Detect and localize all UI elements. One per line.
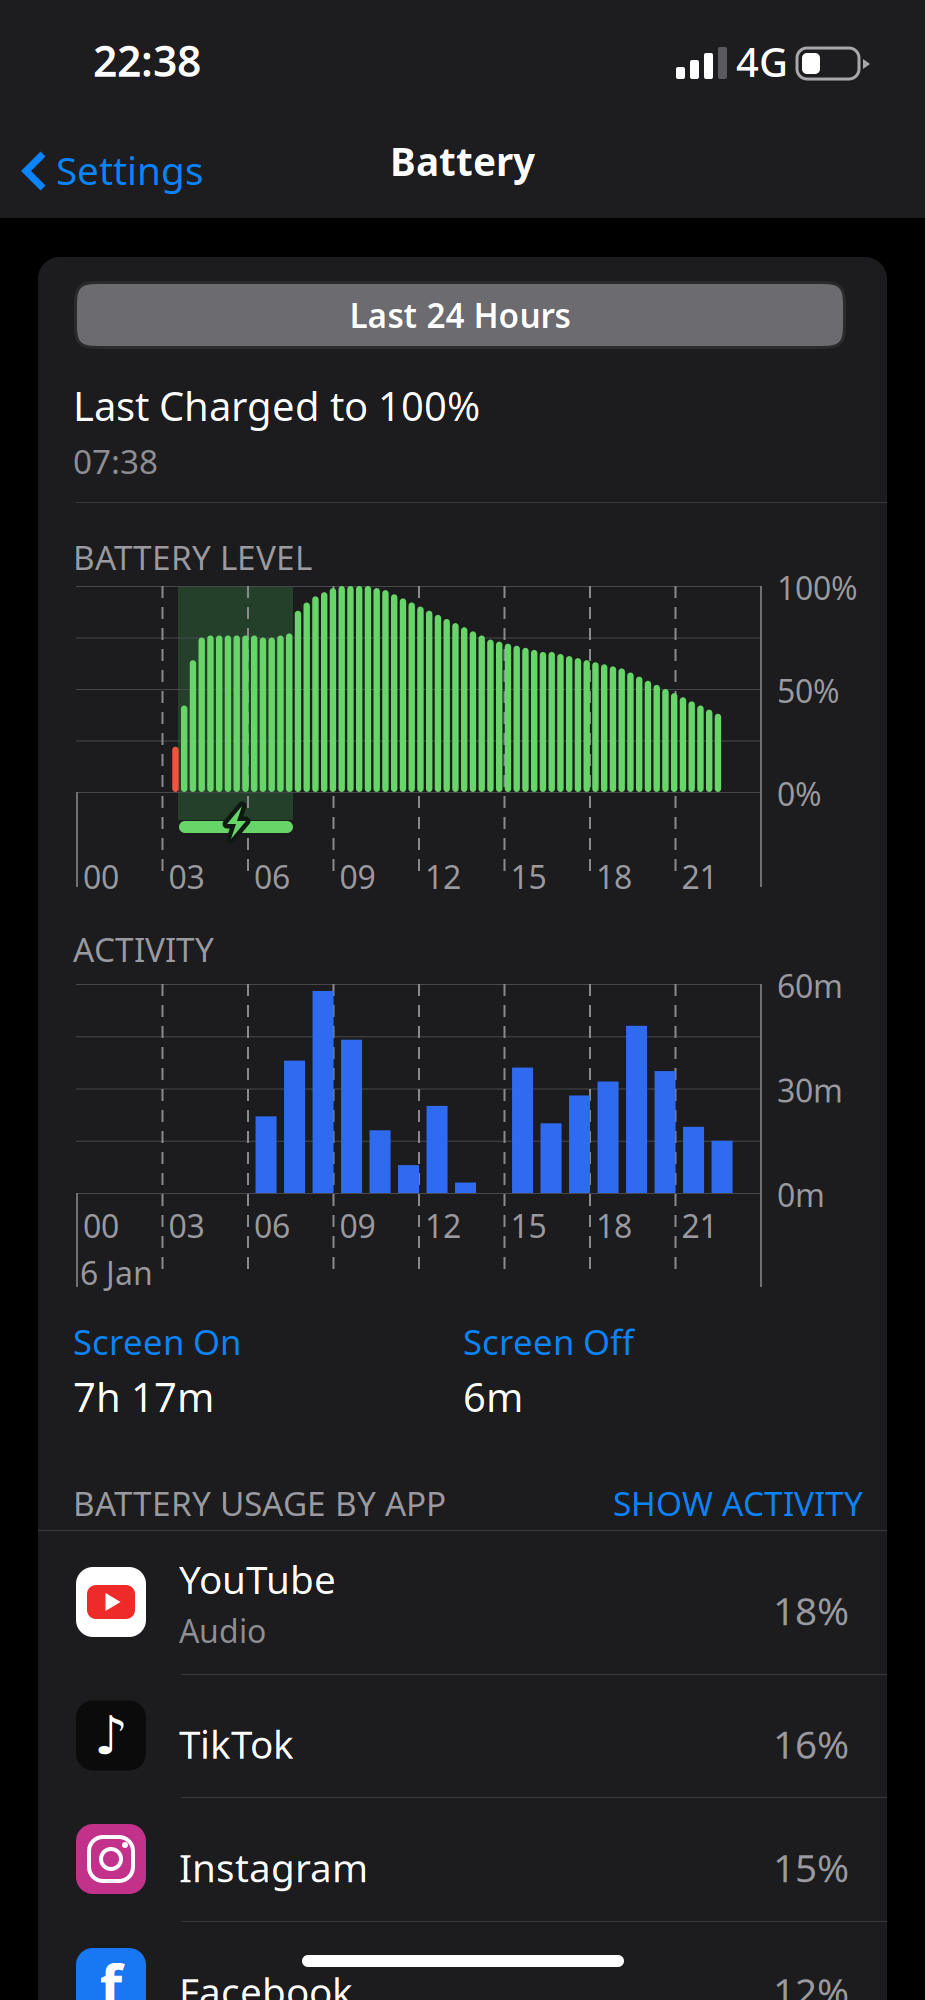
staticText: TikTok (179, 1718, 294, 1769)
staticText: 7h 17m (73, 1370, 214, 1423)
button[interactable]: ♪ (38, 1674, 887, 1797)
staticText: 21 (681, 1204, 717, 1247)
button[interactable]: Last 24 Hours (74, 281, 846, 349)
staticText: 0m (777, 1173, 825, 1216)
staticText: 15% (773, 1842, 849, 1893)
staticText: Settings (56, 144, 204, 196)
staticText: ♪ (94, 1705, 128, 1766)
button[interactable]: YouTube (38, 1530, 887, 1674)
staticText: 18 (596, 855, 632, 898)
staticText: 100% (777, 566, 858, 609)
button[interactable]: Instagram (38, 1797, 887, 1921)
staticText: Battery (390, 135, 535, 186)
staticText: 30m (777, 1069, 843, 1111)
staticText: 15 (510, 1204, 546, 1247)
staticText: 00 (83, 1204, 119, 1247)
button[interactable]: Settings (0, 125, 222, 217)
staticText: Facebook (179, 1966, 353, 2000)
staticText: 06 (254, 1204, 290, 1247)
staticText: SHOW ACTIVITY (613, 1481, 863, 1525)
staticText: 50% (777, 669, 840, 712)
staticText: 12 (425, 855, 461, 898)
staticText: 09 (339, 1204, 375, 1247)
staticText: 03 (168, 1204, 204, 1247)
staticText: f (99, 1946, 122, 2000)
staticText: Screen Off (463, 1319, 634, 1365)
staticText: Screen On (73, 1319, 241, 1365)
staticText: 09 (339, 855, 375, 898)
staticText: 0% (777, 772, 822, 815)
staticText: ACTIVITY (73, 927, 214, 971)
staticText: 00 (83, 855, 119, 898)
staticText: BATTERY LEVEL (73, 535, 312, 579)
staticText: Audio (179, 1609, 266, 1652)
staticText: 06 (254, 855, 290, 898)
staticText: 12% (773, 1966, 849, 2000)
staticText: 21 (681, 855, 717, 898)
staticText: 18% (773, 1585, 849, 1636)
button[interactable]: SHOW ACTIVITY (613, 1481, 863, 1525)
staticText: 16% (773, 1718, 849, 1769)
staticText: 4G (736, 35, 788, 88)
staticText: 07:38 (73, 439, 158, 483)
staticText: Last Charged to 100% (73, 379, 480, 432)
staticText: Instagram (179, 1842, 368, 1893)
staticText: BATTERY USAGE BY APP (73, 1481, 446, 1525)
staticText: YouTube (179, 1553, 336, 1604)
staticText: 6 Jan (80, 1251, 153, 1294)
staticText: 60m (777, 964, 843, 1007)
staticText: 03 (168, 855, 204, 898)
staticText: 12 (425, 1204, 461, 1247)
staticText: 18 (596, 1204, 632, 1247)
staticText: Last 24 Hours (349, 293, 570, 337)
staticText: 22:38 (93, 32, 201, 89)
button[interactable]: f (38, 1921, 887, 2000)
staticText: 6m (463, 1370, 523, 1423)
staticText: 15 (510, 855, 546, 898)
